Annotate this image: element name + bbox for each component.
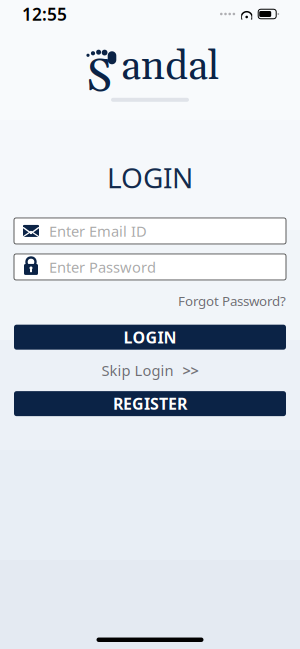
button[interactable]: Forgot Password?: [14, 280, 286, 310]
staticText: REGISTER: [113, 393, 187, 414]
button[interactable]: REGISTER: [14, 391, 286, 416]
staticText: andal: [121, 42, 219, 93]
button[interactable]: LOGIN: [14, 325, 286, 350]
staticText: Forgot Password?: [178, 292, 286, 310]
button[interactable]: Skip Login: [14, 355, 286, 386]
staticText: Enter Email ID: [49, 221, 147, 241]
staticText: S: [86, 49, 111, 107]
staticText: LOGIN: [107, 159, 193, 196]
staticText: >>: [182, 361, 198, 380]
staticText: Skip Login: [101, 361, 173, 380]
staticText: LOGIN: [123, 326, 176, 348]
staticText: Enter Password: [49, 257, 156, 277]
staticText: 12:55: [22, 2, 67, 25]
